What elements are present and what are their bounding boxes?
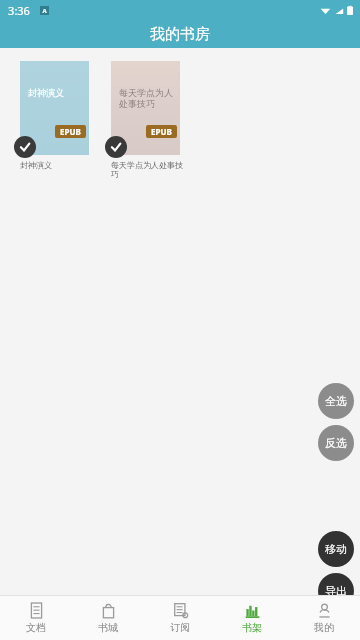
staticText: 文档 bbox=[26, 621, 46, 634]
staticText: A bbox=[42, 7, 47, 15]
button[interactable]: Collapse bbox=[320, 608, 360, 640]
staticText: 封神演义 bbox=[20, 160, 92, 170]
button[interactable]: Selected bbox=[105, 136, 127, 158]
staticText: 封神演义 bbox=[28, 87, 64, 98]
button[interactable]: 订阅 bbox=[144, 596, 216, 640]
staticText: EPUB bbox=[60, 126, 81, 137]
staticText: 反选 bbox=[325, 436, 347, 450]
staticText: 订阅 bbox=[170, 621, 190, 634]
staticText: EPUB bbox=[151, 126, 172, 137]
staticText: 我的 bbox=[314, 621, 334, 634]
staticText: 我的书房 bbox=[150, 25, 210, 44]
staticText: 书城 bbox=[98, 621, 118, 634]
button[interactable]: 反选 bbox=[318, 425, 354, 461]
staticText: 每天学点为人处事技巧 bbox=[119, 87, 174, 110]
staticText: 导出 bbox=[325, 584, 347, 598]
staticText: 移动 bbox=[325, 542, 347, 556]
staticText: 3:36 bbox=[8, 3, 30, 18]
staticText: 全选 bbox=[325, 394, 347, 408]
button[interactable]: 每天学点为人处事技巧 bbox=[111, 61, 183, 180]
button[interactable]: 封神演义 bbox=[20, 61, 92, 170]
button[interactable]: 移动 bbox=[318, 531, 354, 567]
button[interactable]: 书架 bbox=[216, 596, 288, 640]
staticText: 每天学点为人处事技巧 bbox=[111, 160, 183, 180]
button[interactable]: 我的 bbox=[288, 596, 360, 640]
button[interactable]: 全选 bbox=[318, 383, 354, 419]
button[interactable]: Selected bbox=[14, 136, 36, 158]
staticText: 书架 bbox=[242, 621, 262, 634]
button[interactable]: 书城 bbox=[72, 596, 144, 640]
button[interactable]: 导出 bbox=[318, 573, 354, 609]
button[interactable]: 文档 bbox=[0, 596, 72, 640]
